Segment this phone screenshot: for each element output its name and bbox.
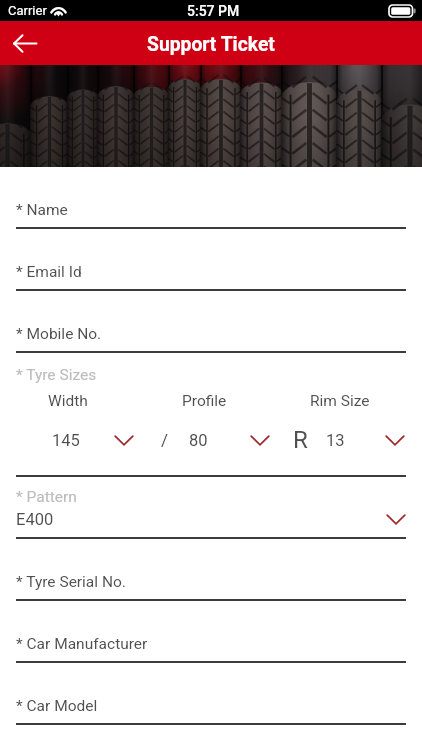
button[interactable]: 80 xyxy=(173,425,295,453)
button[interactable]: Back xyxy=(0,21,50,65)
staticText: Support Ticket xyxy=(147,33,275,56)
staticText: Carrier xyxy=(8,3,47,18)
button[interactable]: * Car Manufacturer xyxy=(16,601,406,663)
staticText: 5:57 PM xyxy=(187,3,240,19)
staticText: * Email Id xyxy=(16,263,82,281)
staticText: / xyxy=(161,430,169,450)
button[interactable]: * Name xyxy=(16,167,406,229)
button[interactable]: * Car Model xyxy=(16,663,406,725)
staticText: E400 xyxy=(16,510,54,529)
staticText: * Tyre Serial No. xyxy=(16,573,126,591)
button[interactable]: 13 xyxy=(308,425,422,453)
staticText: Profile xyxy=(182,392,227,410)
button[interactable]: * Pattern xyxy=(16,477,406,539)
staticText: 13 xyxy=(326,431,345,450)
staticText: 80 xyxy=(189,431,208,450)
staticText: R xyxy=(293,426,308,454)
staticText: * Pattern xyxy=(16,488,77,506)
staticText: 145 xyxy=(52,431,80,450)
button[interactable]: * Email Id xyxy=(16,229,406,291)
staticText: * Car Model xyxy=(16,697,98,715)
staticText: Rim Size xyxy=(310,392,370,410)
staticText: * Mobile No. xyxy=(16,325,102,343)
staticText: Width xyxy=(48,392,88,410)
staticText: * Car Manufacturer xyxy=(16,635,148,653)
button[interactable]: 145 xyxy=(37,425,159,453)
staticText: * Name xyxy=(16,201,68,219)
button[interactable]: * Tyre Serial No. xyxy=(16,539,406,601)
button[interactable]: * Mobile No. xyxy=(16,291,406,353)
staticText: * Tyre Sizes xyxy=(16,366,97,384)
